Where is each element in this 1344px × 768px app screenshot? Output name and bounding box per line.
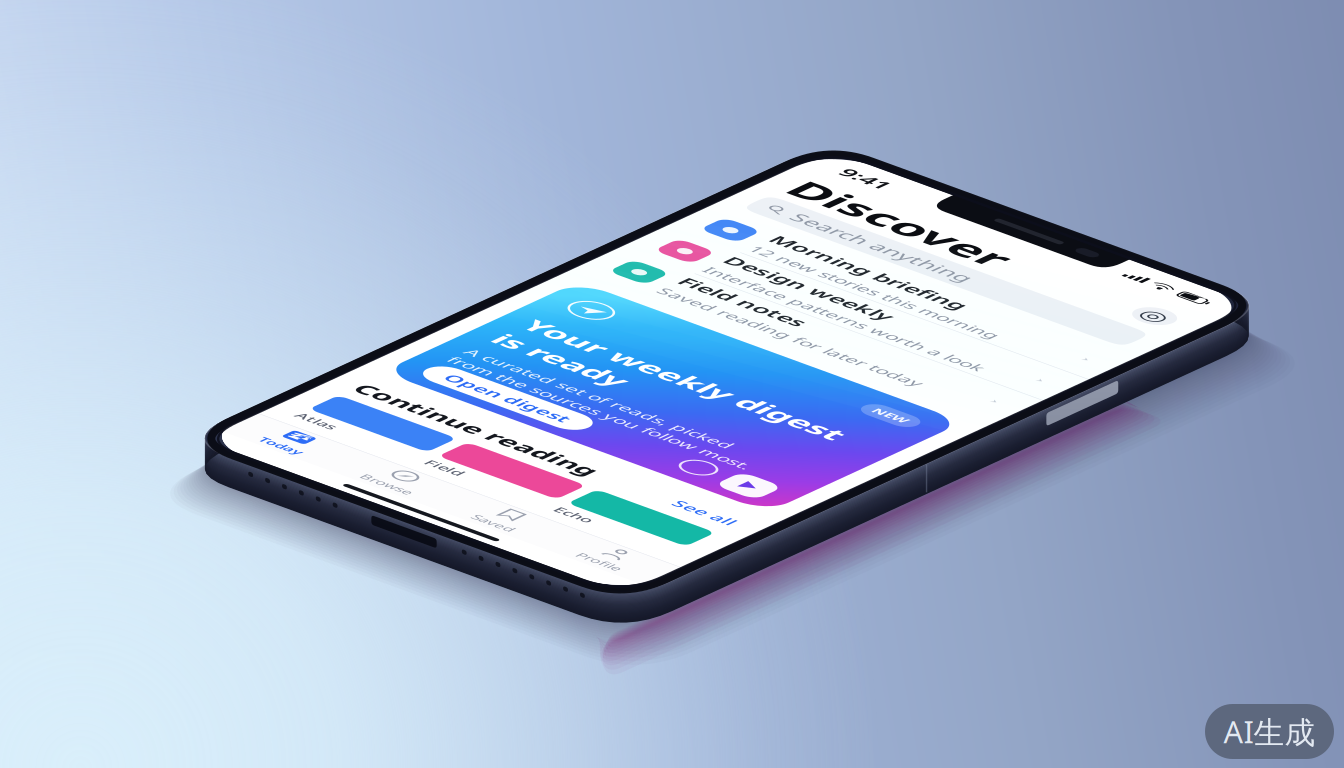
button[interactable]: Design weekly: [0, 221, 390, 281]
staticText: Search anything: [55, 115, 217, 143]
button[interactable]: Search anything: [0, 104, 390, 160]
staticText: Discover: [22, 49, 215, 109]
button[interactable]: NEW: [0, 363, 390, 625]
staticText: NEW: [312, 387, 343, 405]
staticText: Morning briefing: [69, 163, 245, 191]
staticText: 12 new stories this morning: [69, 194, 295, 217]
staticText: Your weekly digest is ready: [38, 439, 326, 520]
button[interactable]: Morning briefing: [0, 160, 390, 220]
staticText: AI生成: [1223, 711, 1315, 752]
button[interactable]: Field notes: [0, 282, 390, 342]
staticText: A curated set of reads, picked from the …: [38, 528, 314, 574]
staticText: Saved reading for later today: [69, 316, 309, 339]
staticText: Interface patterns worth a look: [69, 255, 323, 278]
